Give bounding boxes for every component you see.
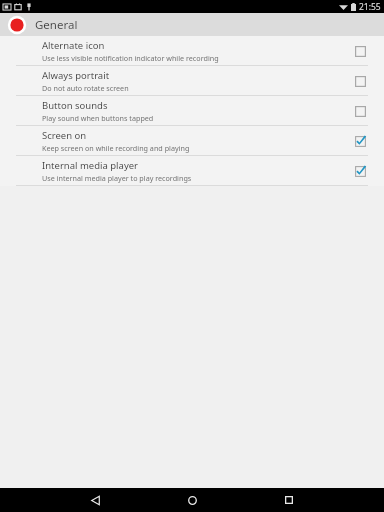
button[interactable]: Alternate icon — [0, 36, 384, 65]
button[interactable]: Unchecked — [350, 41, 370, 61]
button[interactable]: Always portrait — [0, 66, 384, 95]
button[interactable]: Recent apps — [272, 488, 306, 512]
other: Record — [7, 15, 27, 35]
button[interactable]: Button sounds — [0, 96, 384, 125]
staticText: Alternate icon — [42, 39, 105, 52]
button[interactable]: Home — [175, 488, 209, 512]
staticText: Internal media player — [42, 159, 139, 172]
button[interactable]: Back — [78, 488, 112, 512]
staticText: Always portrait — [42, 69, 110, 82]
staticText: Use less visible notification indicator … — [42, 53, 219, 63]
staticText: Keep screen on while recording and playi… — [42, 143, 190, 153]
staticText: Do not auto rotate screen — [42, 83, 129, 93]
staticText: Screen on — [42, 129, 87, 142]
button[interactable]: Unchecked — [350, 101, 370, 121]
staticText: Button sounds — [42, 99, 108, 112]
staticText: Use internal media player to play record… — [42, 173, 192, 183]
button[interactable]: Checked — [350, 161, 370, 181]
button[interactable]: Unchecked — [350, 71, 370, 91]
button[interactable]: Screen on — [0, 126, 384, 155]
staticText: Play sound when buttons tapped — [42, 113, 154, 123]
button[interactable]: Internal media player — [0, 156, 384, 185]
staticText: 21:55 — [359, 1, 381, 13]
staticText: General — [35, 17, 78, 33]
button[interactable]: Record — [0, 13, 384, 36]
button[interactable]: Checked — [350, 131, 370, 151]
